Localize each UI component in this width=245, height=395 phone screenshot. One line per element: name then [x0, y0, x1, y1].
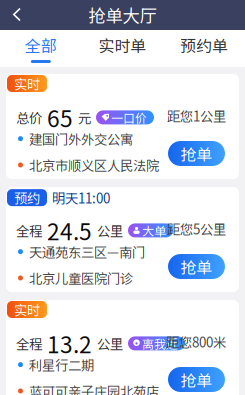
staticText: 元 — [78, 108, 91, 127]
staticText: 天通苑东三区—南门 — [29, 242, 145, 261]
staticText: 公里 — [97, 334, 123, 353]
staticText: 明天11:00 — [52, 188, 110, 207]
staticText: 24.5 — [42, 214, 97, 247]
staticText: 抢单 — [180, 142, 212, 165]
staticText: 预约 — [14, 188, 40, 207]
button[interactable]: 抢单 — [168, 254, 225, 279]
staticText: 全程 — [16, 334, 42, 353]
button[interactable]: 预约单 — [163, 30, 245, 67]
button[interactable]: 实时 — [6, 300, 239, 395]
button[interactable]: 抢单 — [168, 367, 225, 392]
staticText: 抢单 — [180, 255, 212, 278]
staticText: 距您800米 — [166, 332, 226, 351]
button[interactable]: 抢单 — [168, 141, 225, 166]
staticText: 一口价 — [111, 109, 147, 126]
staticText: 蓝可可亲子庄园北苑店 — [29, 381, 159, 395]
staticText: 公里 — [97, 221, 123, 240]
staticText: 抢单大厅 — [88, 2, 156, 28]
staticText: 实时 — [14, 300, 40, 319]
staticText: 13.2 — [42, 327, 97, 360]
staticText: 总价 — [16, 108, 42, 127]
staticText: 抢单 — [180, 368, 212, 391]
staticText: 实时单 — [98, 33, 146, 57]
staticText: 距您1公里 — [167, 106, 226, 125]
button[interactable]: 实时 — [6, 74, 239, 179]
staticText: 全程 — [16, 221, 42, 240]
staticText: 北京儿童医院门诊 — [29, 268, 133, 288]
staticText: 利星行二期 — [29, 355, 94, 374]
staticText: 实时 — [14, 74, 40, 93]
staticText: 离我近 — [142, 335, 178, 352]
staticText: 距您5公里 — [167, 219, 226, 238]
staticText: 预约单 — [180, 33, 228, 57]
button[interactable]: Back — [0, 0, 34, 30]
staticText: 65 — [42, 101, 78, 134]
staticText: 建国门外外交公寓 — [29, 129, 133, 148]
button[interactable]: 实时单 — [82, 30, 163, 67]
button[interactable]: 全部 — [0, 30, 82, 67]
staticText: 北京市顺义区人民法院 — [29, 155, 159, 175]
button[interactable]: 预约 — [6, 187, 239, 292]
staticText: 全部 — [25, 33, 57, 57]
staticText: 大单 — [142, 222, 166, 239]
